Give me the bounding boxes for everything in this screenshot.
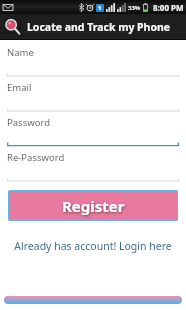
- staticText: Re-Password: [7, 151, 65, 164]
- staticText: 33%: [128, 4, 141, 12]
- staticText: Already has account! Login here: [14, 239, 172, 253]
- button[interactable]: Already has account! Login here: [0, 239, 186, 253]
- staticText: Register: [62, 196, 125, 216]
- staticText: 8:00 PM: [153, 2, 184, 13]
- button[interactable]: Re-Password: [0, 151, 186, 186]
- button[interactable]: App icon: [0, 14, 186, 39]
- staticText: Locate and Track my Phone: [27, 20, 171, 34]
- staticText: Password: [7, 116, 50, 129]
- button[interactable]: Password: [0, 116, 186, 151]
- other: App icon: [4, 18, 21, 35]
- staticText: 1: [98, 4, 102, 12]
- button[interactable]: Name: [0, 46, 186, 81]
- button[interactable]: Email: [0, 81, 186, 116]
- button[interactable]: Register: [8, 190, 178, 221]
- staticText: Name: [7, 46, 34, 59]
- staticText: Email: [7, 81, 32, 94]
